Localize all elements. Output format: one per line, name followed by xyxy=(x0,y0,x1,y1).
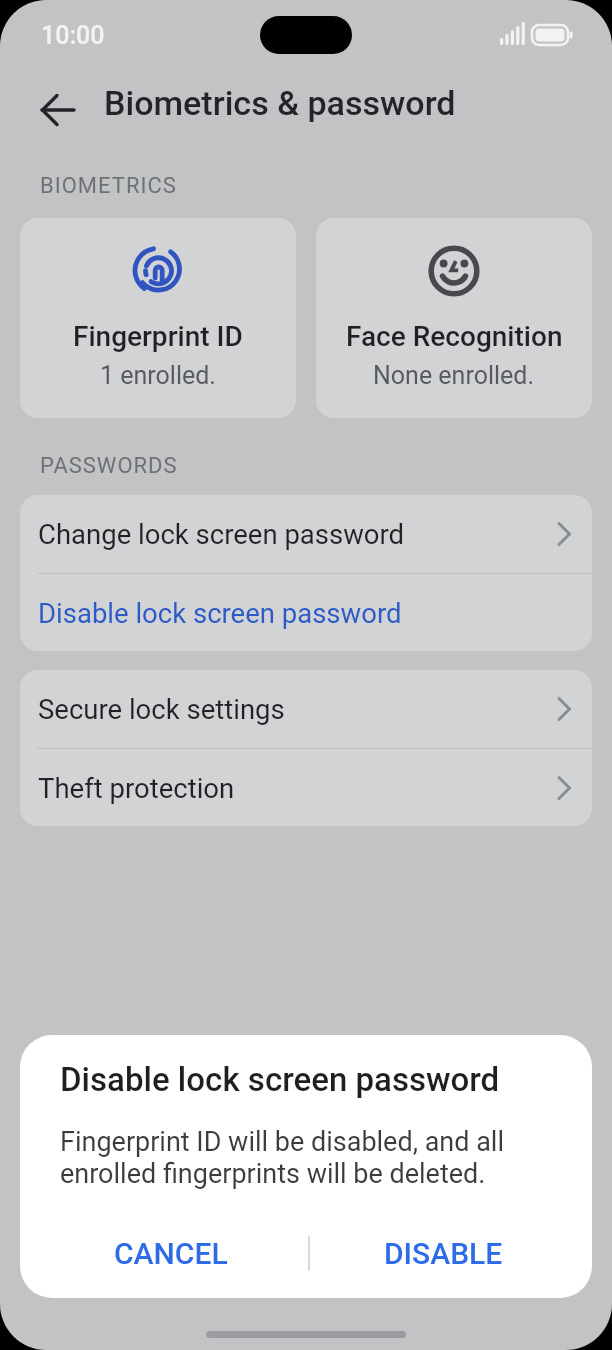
staticText: Fingerprint ID xyxy=(73,320,243,353)
button[interactable]: Fingerprint ID xyxy=(20,218,296,418)
staticText: Theft protection xyxy=(38,772,235,804)
button[interactable]: CANCEL xyxy=(81,1223,261,1283)
staticText: Biometrics & password xyxy=(104,83,456,123)
staticText: None enrolled. xyxy=(373,361,535,390)
staticText: Face Recognition xyxy=(346,320,563,353)
staticText: CANCEL xyxy=(114,1236,228,1271)
button[interactable] xyxy=(30,84,86,136)
button[interactable]: Disable lock screen password xyxy=(20,574,592,651)
staticText: Secure lock settings xyxy=(38,693,285,725)
button[interactable]: Face Recognition xyxy=(316,218,592,418)
staticText: Fingerprint ID will be disabled, and all… xyxy=(60,1126,504,1190)
button[interactable]: Theft protection xyxy=(20,749,592,826)
button[interactable]: Secure lock settings xyxy=(20,670,592,748)
staticText: PASSWORDS xyxy=(40,453,178,479)
staticText: 10:00 xyxy=(41,21,105,50)
staticText: 1 enrolled. xyxy=(100,361,216,390)
button[interactable]: DISABLE xyxy=(353,1223,533,1283)
staticText: Disable lock screen password xyxy=(60,1060,500,1099)
staticText: Disable lock screen password xyxy=(38,597,402,629)
staticText: Change lock screen password xyxy=(38,518,405,550)
staticText: DISABLE xyxy=(384,1236,503,1271)
staticText: BIOMETRICS xyxy=(40,173,177,199)
button[interactable]: Change lock screen password xyxy=(20,495,592,573)
